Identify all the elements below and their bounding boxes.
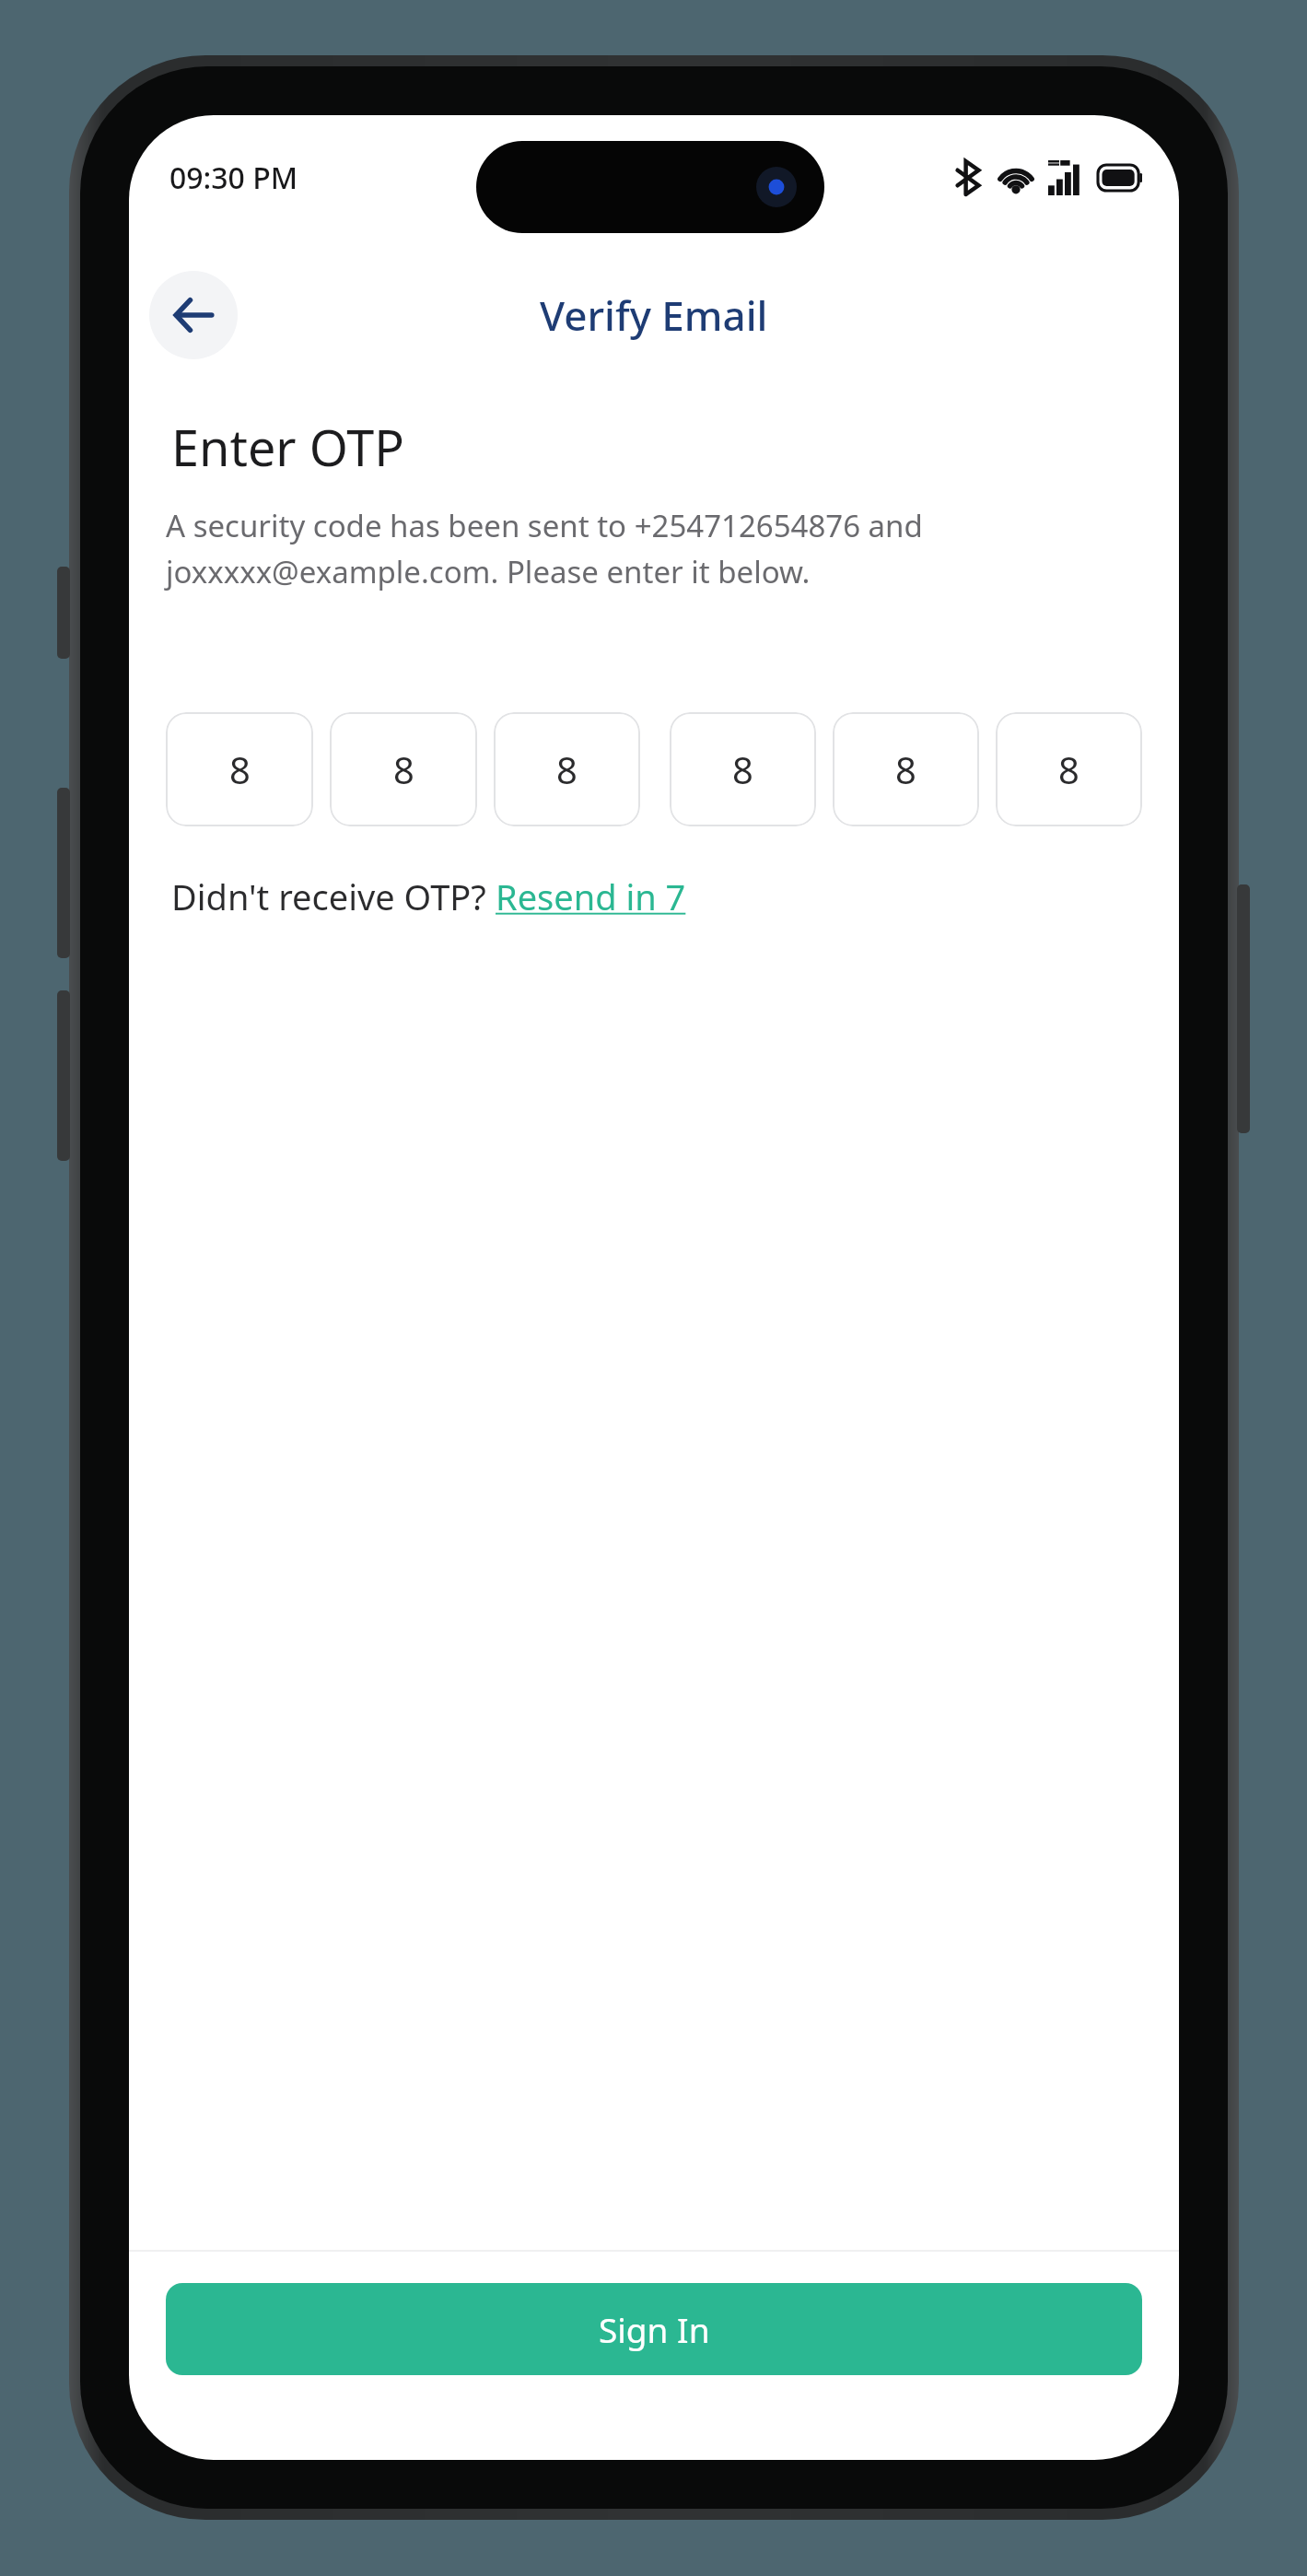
staticText: 8: [229, 744, 251, 794]
button[interactable]: 8: [833, 712, 979, 826]
staticText: 8: [895, 744, 916, 794]
staticText: A security code has been sent to +254712…: [166, 505, 1142, 592]
staticText: 8: [732, 744, 753, 794]
button[interactable]: Back: [149, 271, 238, 359]
staticText: Enter OTP: [171, 413, 404, 481]
staticText: Verify Email: [540, 287, 768, 343]
button[interactable]: 8: [670, 712, 816, 826]
staticText: 8: [1058, 744, 1079, 794]
button[interactable]: Resend in 7: [496, 872, 686, 920]
staticText: Sign In: [599, 2306, 710, 2352]
button[interactable]: Sign In: [166, 2283, 1142, 2375]
staticText: 09:30 PM: [169, 158, 298, 198]
staticText: 8: [393, 744, 414, 794]
staticText: Didn't receive OTP?: [171, 872, 496, 920]
button[interactable]: 8: [330, 712, 477, 826]
staticText: 8: [556, 744, 578, 794]
button[interactable]: 8: [494, 712, 640, 826]
staticText: Resend in 7: [496, 872, 686, 920]
button[interactable]: 8: [996, 712, 1142, 826]
button[interactable]: 8: [166, 712, 313, 826]
